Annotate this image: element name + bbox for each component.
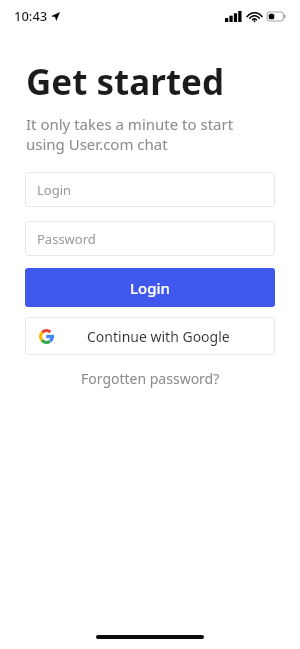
staticText: It only takes a minute to start using Us… bbox=[26, 114, 234, 154]
button[interactable]: Google bbox=[25, 317, 275, 355]
staticText: Continue with Google bbox=[87, 327, 230, 346]
button[interactable]: Password bbox=[25, 221, 275, 256]
staticText: Password bbox=[37, 230, 96, 248]
staticText: 10:43 bbox=[14, 7, 48, 25]
other: Google bbox=[39, 329, 54, 344]
button[interactable]: Forgotten password? bbox=[0, 369, 300, 388]
staticText: Get started bbox=[26, 58, 225, 106]
staticText: Login bbox=[37, 181, 72, 199]
button[interactable]: Login bbox=[25, 268, 275, 307]
staticText: Forgotten password? bbox=[81, 369, 220, 388]
staticText: Login bbox=[130, 278, 170, 298]
button[interactable]: Login bbox=[25, 172, 275, 207]
